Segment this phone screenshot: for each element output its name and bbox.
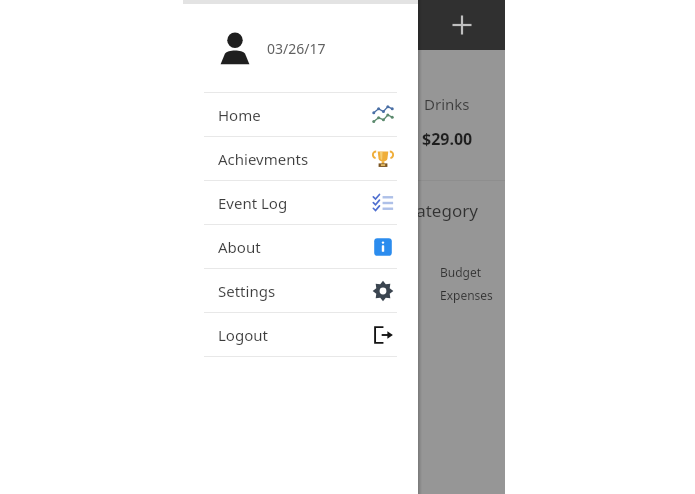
button[interactable]: Settings (183, 269, 418, 312)
staticText: Settings (218, 281, 372, 301)
button[interactable]: About (183, 225, 418, 268)
button[interactable]: Logout (183, 313, 418, 356)
button[interactable]: Event Log (183, 181, 418, 224)
staticText: Event Log (218, 193, 372, 213)
staticText: 03/26/17 (267, 39, 326, 58)
staticText: $29.00 (422, 128, 473, 150)
staticText: Home (218, 105, 372, 125)
button[interactable]: Achievments (183, 137, 418, 180)
staticText: Drinks (424, 94, 470, 114)
staticText: Achievments (218, 149, 372, 169)
staticText: About (218, 237, 372, 257)
staticText: Budget (440, 264, 482, 280)
staticText: Expenses (440, 287, 493, 303)
staticText: category (408, 199, 478, 222)
staticText: Logout (218, 325, 372, 345)
button[interactable]: Add (445, 8, 479, 42)
button[interactable]: Home (183, 93, 418, 136)
